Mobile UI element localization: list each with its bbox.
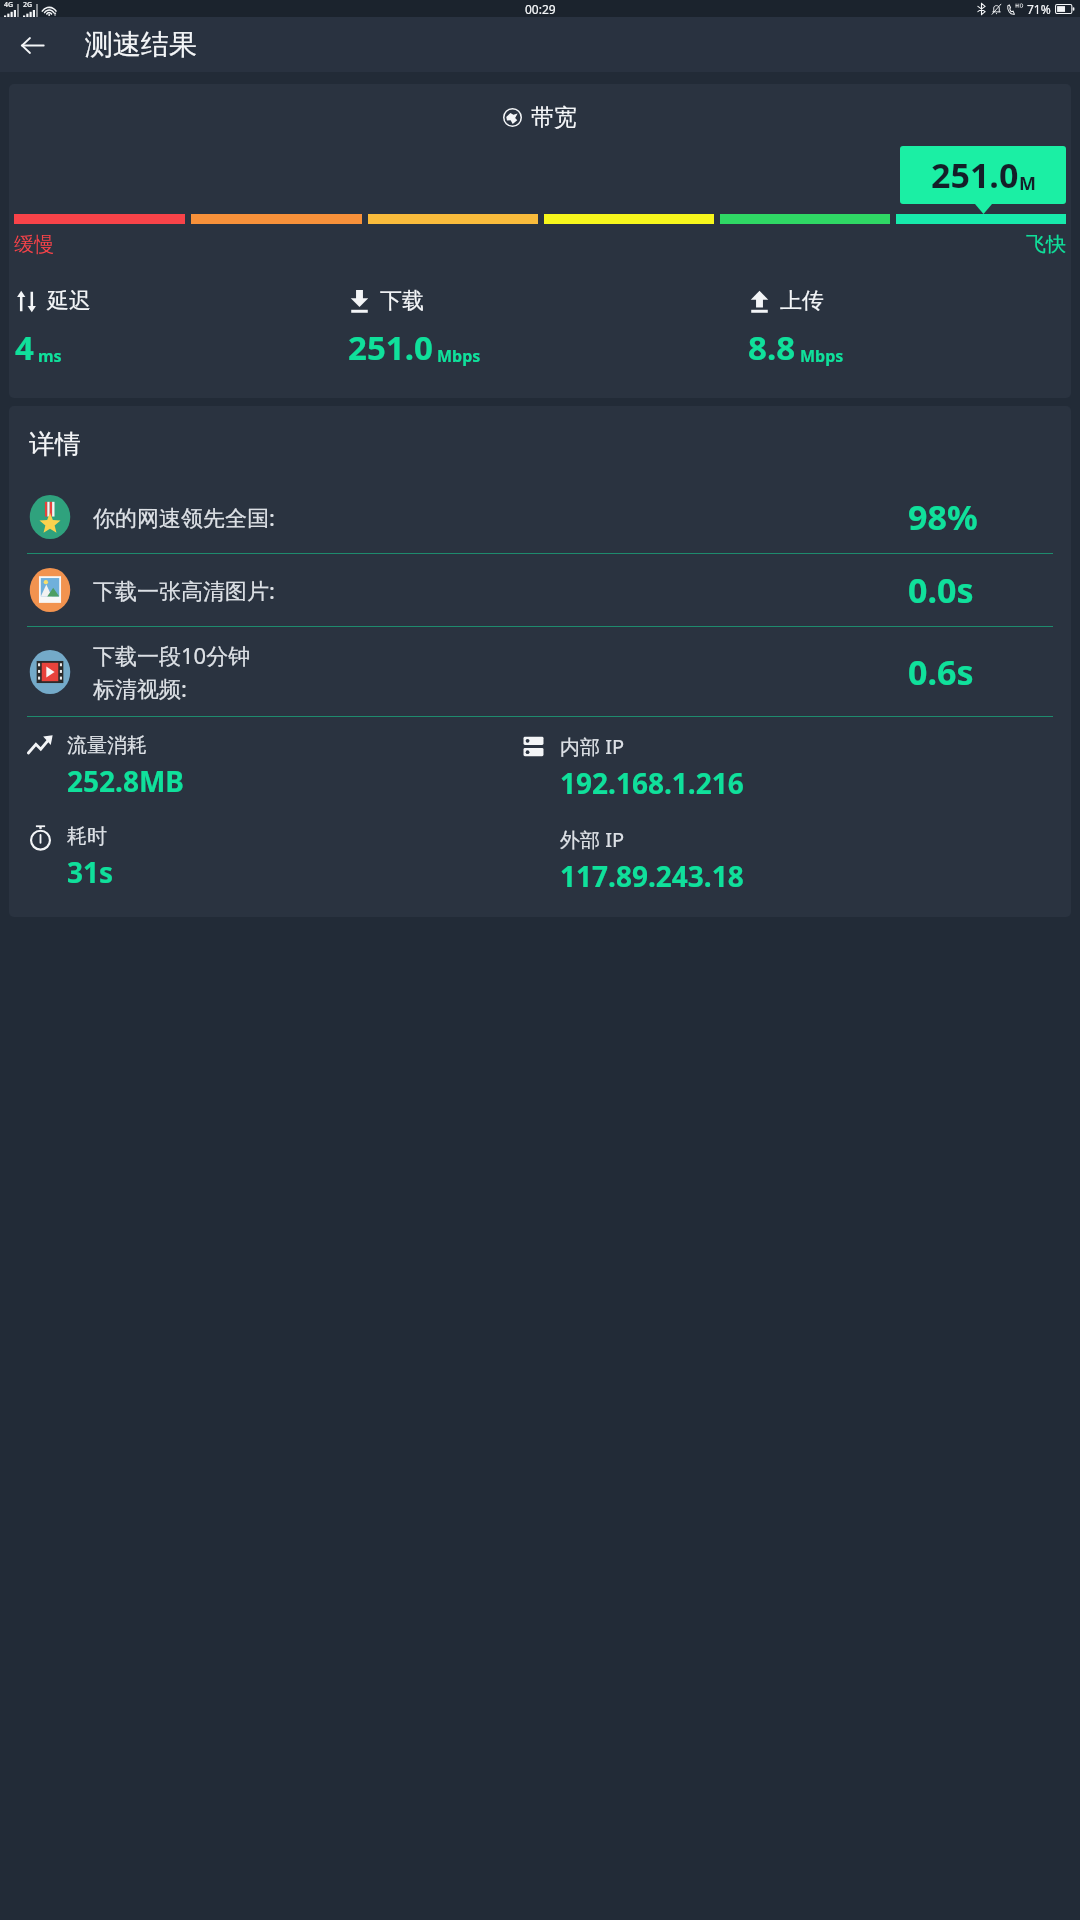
staticText: 下载一张高清图片: <box>93 575 275 605</box>
staticText: 0.6s <box>908 649 1053 695</box>
staticText: 4G <box>4 0 14 10</box>
button[interactable]: 上传 <box>748 287 1065 370</box>
staticText: 缓慢 <box>14 232 540 257</box>
staticText: 下载一段10分钟 <box>93 640 251 670</box>
button[interactable]: 耗时 <box>27 824 114 891</box>
staticText: 详情 <box>29 428 81 461</box>
staticText: 耗时 <box>67 824 107 849</box>
staticText: M <box>1019 171 1036 196</box>
staticText: 98% <box>908 494 1053 540</box>
staticText: 测速结果 <box>85 27 197 62</box>
staticText: 71% <box>1027 1 1051 17</box>
button[interactable]: 流量消耗 <box>27 733 184 800</box>
staticText: 2G <box>23 0 33 10</box>
staticText: 251.0 <box>931 152 1019 198</box>
staticText: 内部 IP <box>560 733 625 760</box>
staticText: 0.0s <box>908 567 1053 613</box>
staticText: 外部 IP <box>560 826 625 853</box>
staticText: 带宽 <box>531 103 577 132</box>
staticText: 00:29 <box>525 1 556 17</box>
button[interactable]: 下载一段10分钟 <box>9 627 1071 716</box>
staticText: ms <box>38 345 62 367</box>
button[interactable]: 你的网速领先全国: <box>9 481 1071 553</box>
staticText: Mbps <box>800 345 844 367</box>
button[interactable]: 下载 <box>348 287 748 370</box>
button[interactable]: 下载一张高清图片: <box>9 554 1071 626</box>
staticText: 上传 <box>780 287 824 315</box>
staticText: 192.168.1.216 <box>560 764 744 802</box>
staticText: 251.0 <box>348 325 433 370</box>
staticText: 252.8MB <box>67 762 184 800</box>
staticText: 117.89.243.18 <box>560 857 744 895</box>
button[interactable]: 带宽 <box>9 84 1071 398</box>
staticText: Mbps <box>437 345 481 367</box>
staticText: 31s <box>67 853 114 891</box>
button[interactable]: 内部 IP <box>520 733 744 802</box>
staticText: 延迟 <box>47 287 91 315</box>
staticText: 8.8 <box>748 325 796 370</box>
staticText: 标清视频: <box>93 673 187 703</box>
staticText: 4 <box>15 325 34 370</box>
staticText: 下载 <box>380 287 424 315</box>
staticText: 你的网速领先全国: <box>93 502 275 532</box>
button[interactable]: 外部 IP <box>520 826 744 895</box>
staticText: 流量消耗 <box>67 733 147 758</box>
button[interactable]: Back <box>9 22 55 68</box>
button[interactable]: 延迟 <box>15 287 348 370</box>
staticText: 飞快 <box>540 232 1066 257</box>
